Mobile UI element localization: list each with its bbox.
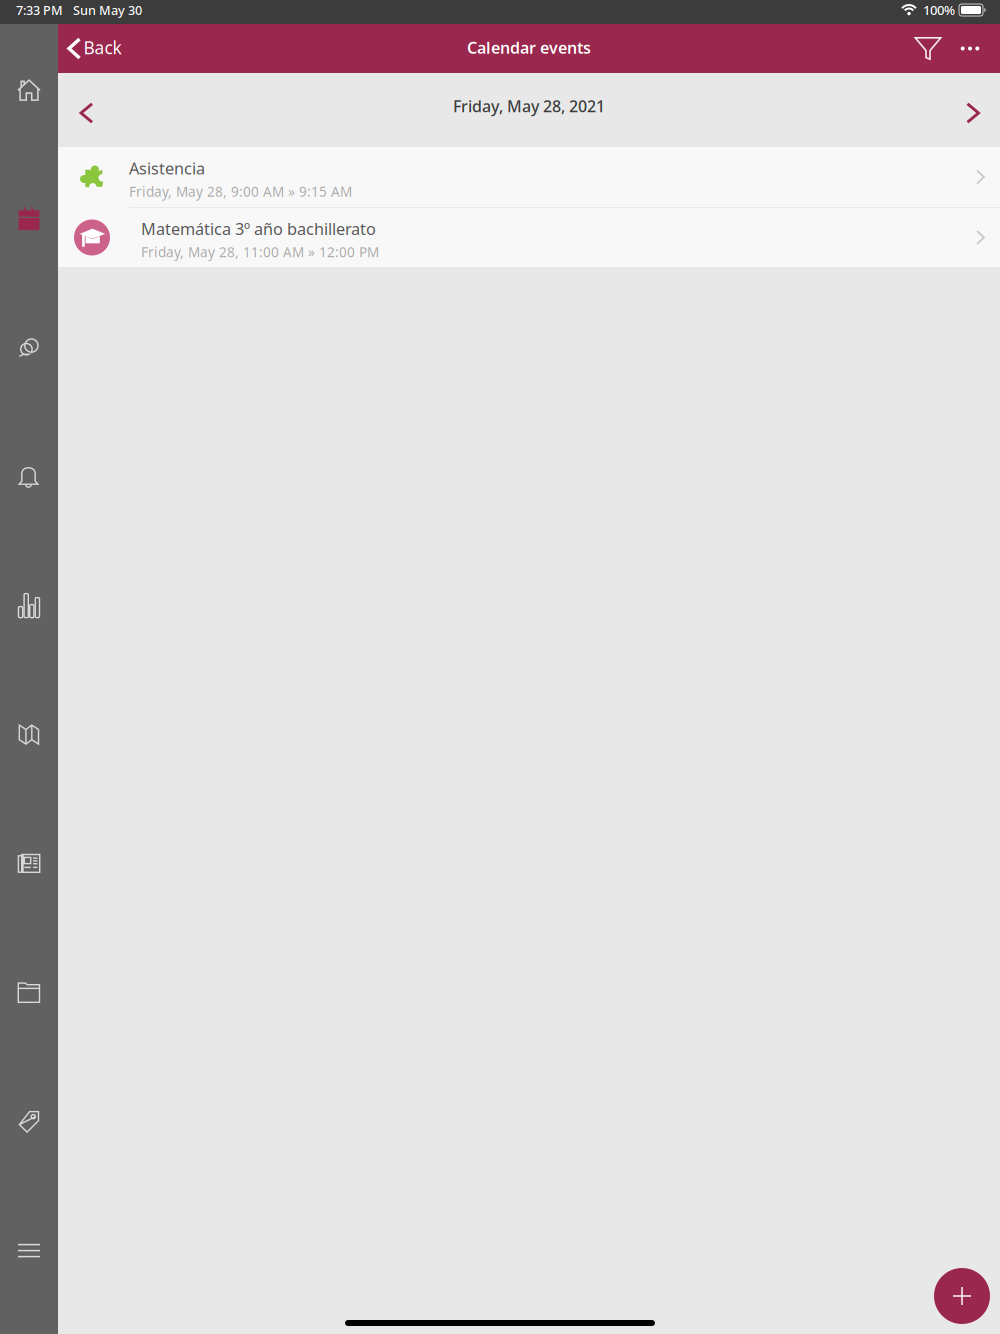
staticText: Friday, May 28, 11:00 AM » 12:00 PM <box>141 243 379 261</box>
staticText: Calendar events <box>467 37 591 58</box>
staticText: Matemática 3º año bachillerato <box>141 218 376 240</box>
button[interactable]: Files <box>0 928 58 1057</box>
staticText: 7:33 PM <box>16 1 63 19</box>
staticText: 100% <box>923 1 955 19</box>
staticText: Back <box>83 36 121 59</box>
button[interactable]: Statistics <box>0 541 58 670</box>
button[interactable]: Home <box>0 25 58 154</box>
button[interactable]: Filter <box>906 24 949 73</box>
staticText: Friday, May 28, 9:00 AM » 9:15 AM <box>129 182 352 201</box>
button[interactable]: Next day <box>946 76 1000 150</box>
button[interactable]: Calendar <box>0 154 58 283</box>
button[interactable]: Tags <box>0 1057 58 1186</box>
button[interactable]: Asistencia <box>58 147 1000 208</box>
button[interactable]: Matemática 3º año bachillerato <box>58 208 1000 267</box>
button[interactable]: News <box>0 799 58 928</box>
button[interactable]: Menu <box>0 1186 58 1315</box>
button[interactable]: Messages <box>0 283 58 412</box>
staticText: Sun May 30 <box>73 1 142 19</box>
button[interactable]: Previous day <box>58 76 115 150</box>
button[interactable]: Add event <box>934 1268 990 1324</box>
staticText: Friday, May 28, 2021 <box>453 95 605 117</box>
button[interactable]: More options <box>949 24 990 73</box>
button[interactable]: Back <box>58 24 131 73</box>
button[interactable]: Map <box>0 670 58 799</box>
staticText: Asistencia <box>129 157 205 179</box>
button[interactable]: Notifications <box>0 412 58 541</box>
